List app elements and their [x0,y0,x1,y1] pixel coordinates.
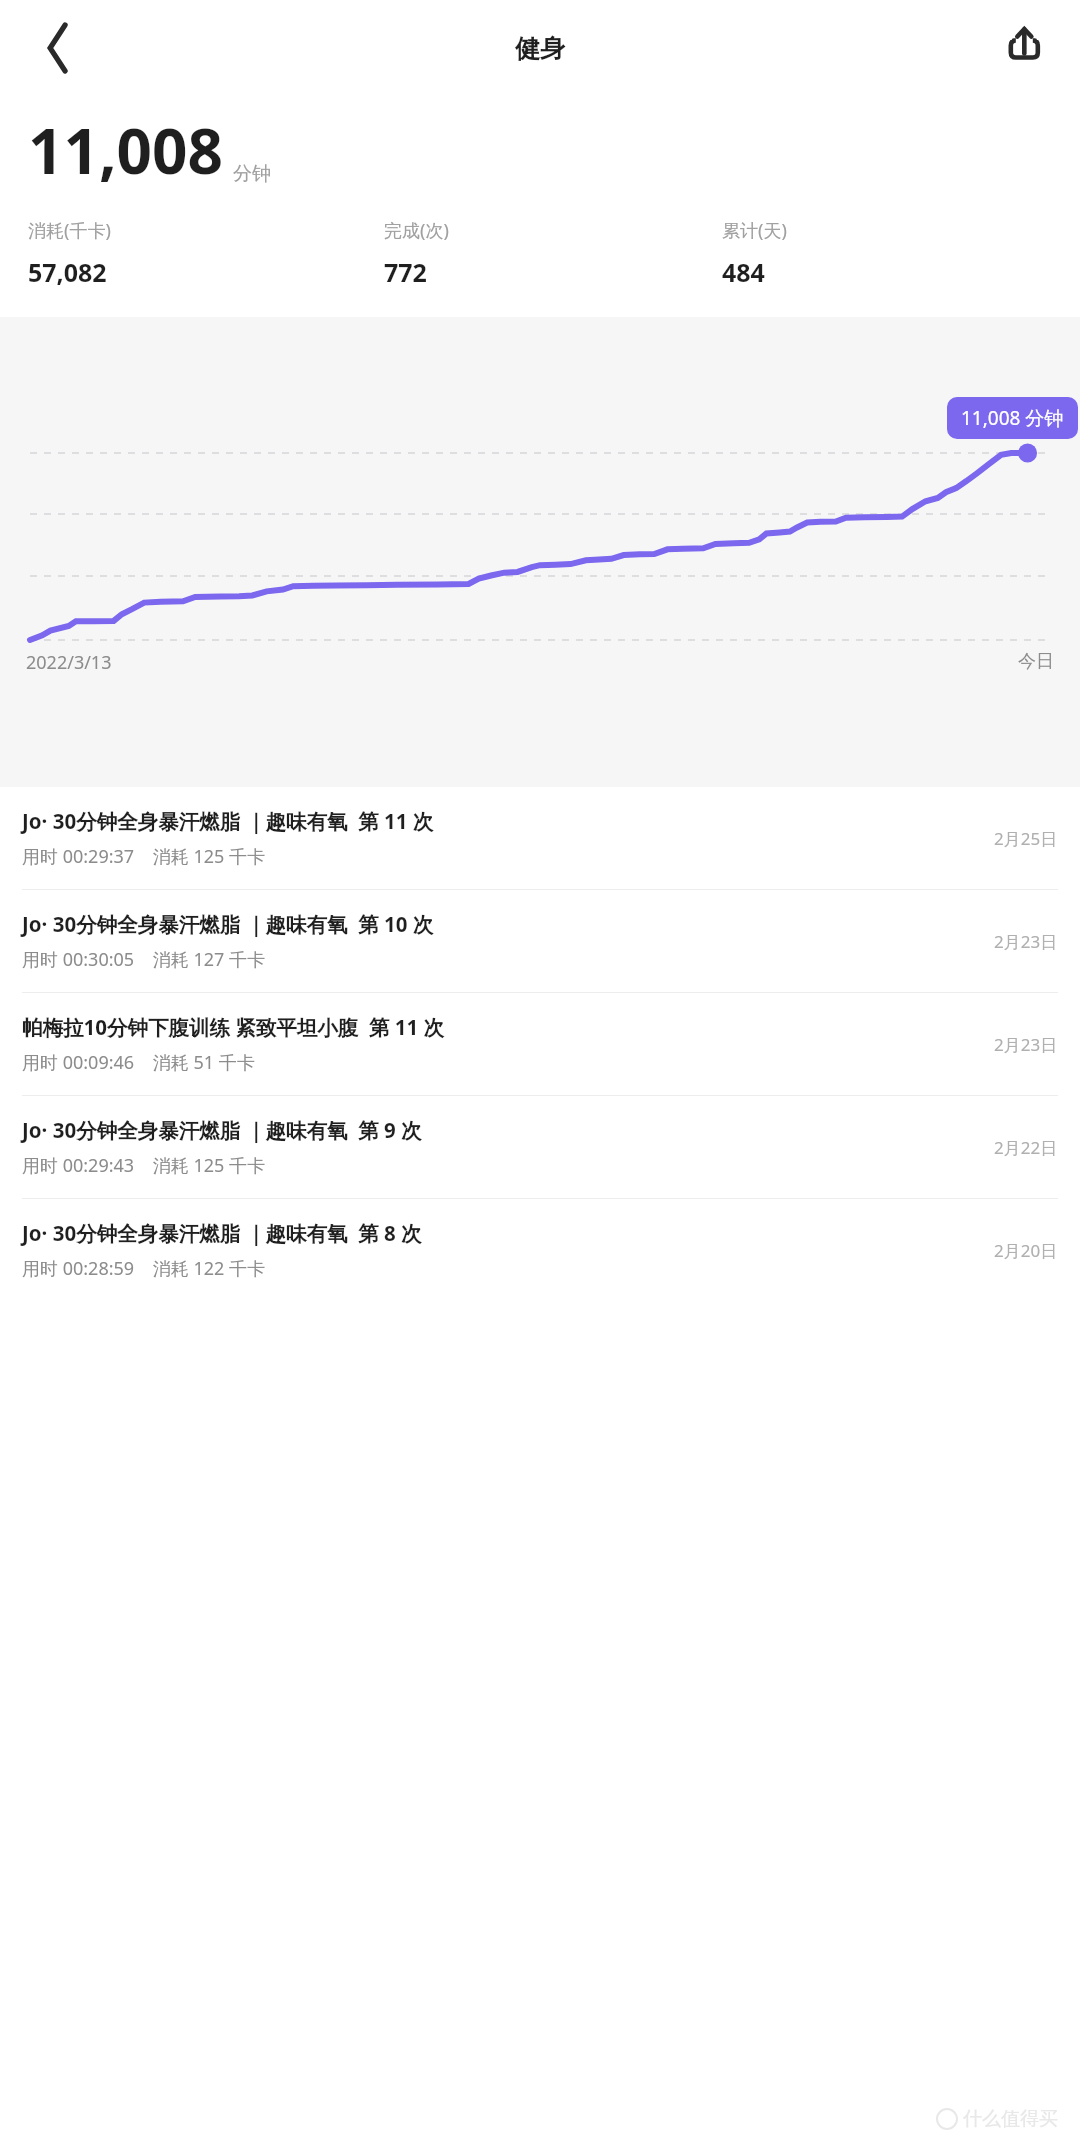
button[interactable]: Jo· 30分钟全身暴汗燃脂 ｜趣味有氧 第 9 次 [0,1096,1080,1198]
staticText: 用时 00:30:05 消耗 127 千卡 [22,947,266,972]
staticText: 2月22日 [994,1136,1058,1159]
staticText: Jo· 30分钟全身暴汗燃脂 ｜趣味有氧 第 8 次 [22,1219,422,1247]
staticText: 完成(次) [384,218,449,243]
button[interactable]: Back [0,0,96,96]
button[interactable]: 11,008 分钟 [961,405,1064,431]
staticText: 2月25日 [994,827,1058,850]
staticText: Jo· 30分钟全身暴汗燃脂 ｜趣味有氧 第 9 次 [22,1116,422,1144]
staticText: 用时 00:29:43 消耗 125 千卡 [22,1153,266,1178]
staticText: 分钟 [233,162,271,186]
staticText: 今日 [1018,650,1054,673]
staticText: 484 [722,255,765,289]
staticText: 帕梅拉10分钟下腹训练 紧致平坦小腹 第 11 次 [22,1013,445,1041]
button[interactable]: 帕梅拉10分钟下腹训练 紧致平坦小腹 第 11 次 [0,993,1080,1095]
staticText: 2月20日 [994,1239,1058,1262]
staticText: 累计(天) [722,218,787,243]
button[interactable]: Jo· 30分钟全身暴汗燃脂 ｜趣味有氧 第 11 次 [0,787,1080,889]
staticText: Jo· 30分钟全身暴汗燃脂 ｜趣味有氧 第 10 次 [22,910,434,938]
button[interactable]: Jo· 30分钟全身暴汗燃脂 ｜趣味有氧 第 10 次 [0,890,1080,992]
staticText: Jo· 30分钟全身暴汗燃脂 ｜趣味有氧 第 11 次 [22,807,434,835]
staticText: 消耗(千卡) [28,218,111,243]
staticText: 772 [384,255,427,289]
staticText: 用时 00:28:59 消耗 122 千卡 [22,1256,266,1281]
staticText: 2月23日 [994,930,1058,953]
staticText: 2022/3/13 [26,650,112,675]
staticText: 用时 00:09:46 消耗 51 千卡 [22,1050,255,1075]
staticText: 什么值得买 [963,2107,1058,2131]
button[interactable]: Jo· 30分钟全身暴汗燃脂 ｜趣味有氧 第 8 次 [0,1199,1080,1301]
staticText: 2月23日 [994,1033,1058,1056]
button[interactable]: Share [984,0,1080,96]
staticText: 11,008 [28,108,223,192]
staticText: 用时 00:29:37 消耗 125 千卡 [22,844,266,869]
staticText: 11,008 分钟 [961,405,1064,431]
staticText: 57,082 [28,255,107,289]
staticText: 健身 [515,33,565,64]
